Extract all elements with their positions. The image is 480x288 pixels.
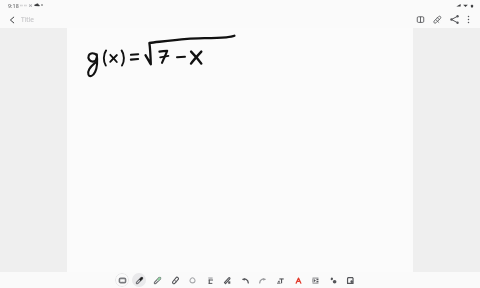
button[interactable]: Transform (203, 273, 217, 287)
staticText: 9:18 (8, 2, 19, 9)
button[interactable]: Shape (185, 273, 199, 287)
button[interactable]: Undo (238, 273, 252, 287)
button[interactable]: Insert media (308, 273, 322, 287)
button[interactable]: Share (446, 11, 462, 27)
button[interactable]: Sticky note (343, 273, 357, 287)
staticText: Title (21, 15, 34, 24)
button[interactable]: Attach file (429, 11, 445, 27)
button[interactable]: Highlighter (150, 273, 164, 287)
button[interactable]: Select (326, 273, 340, 287)
button[interactable]: Laser pointer (220, 273, 234, 287)
button[interactable]: Redo (255, 273, 269, 287)
button[interactable]: Back (3, 11, 20, 28)
button[interactable]: Highlight color (291, 273, 305, 287)
button[interactable]: Pen (132, 273, 146, 287)
button[interactable]: Pages (412, 11, 428, 27)
button[interactable]: Keyboard (115, 273, 129, 287)
button[interactable]: Eraser (168, 273, 182, 287)
button[interactable]: More options (460, 11, 476, 27)
button[interactable]: Note page (67, 28, 413, 272)
button[interactable]: Text (273, 273, 287, 287)
